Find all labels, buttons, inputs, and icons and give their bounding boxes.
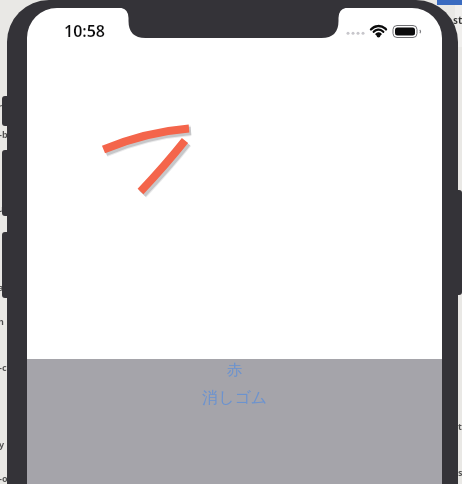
button[interactable]: 赤 — [217, 360, 252, 381]
staticText: -b — [0, 128, 8, 140]
staticText: s — [458, 466, 462, 478]
staticText: -c — [0, 361, 7, 373]
staticText: u — [0, 202, 4, 214]
staticText: at — [0, 281, 8, 293]
staticText: -o — [0, 472, 8, 484]
staticText: h — [0, 315, 4, 327]
staticText: 消しゴム — [202, 388, 268, 408]
button[interactable]: 消しゴム — [192, 387, 278, 409]
staticText: st — [453, 13, 462, 27]
staticText: 赤 — [227, 361, 242, 380]
staticText: ro — [0, 100, 8, 112]
staticText: 10:58 — [64, 20, 106, 42]
staticText: t — [458, 420, 462, 432]
staticText: y — [0, 438, 5, 450]
